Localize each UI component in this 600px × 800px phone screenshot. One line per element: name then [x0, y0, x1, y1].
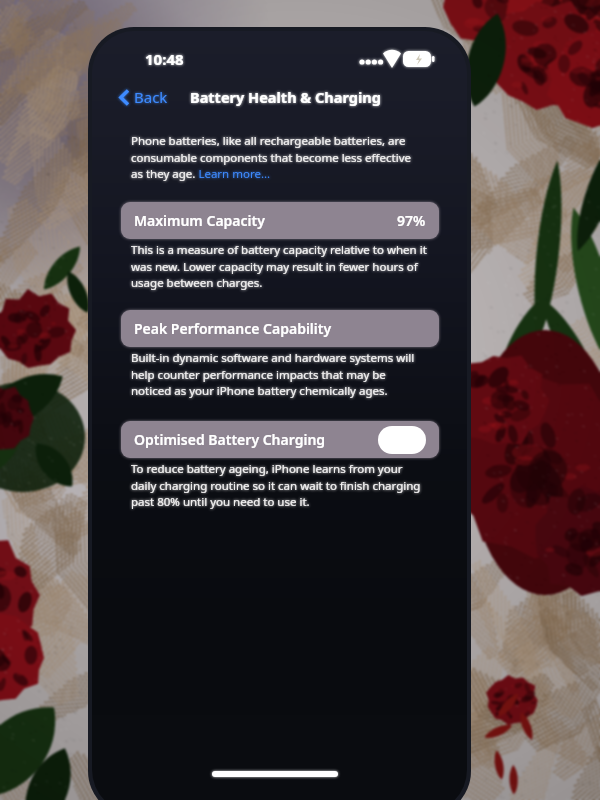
staticText: This is a measure of battery capacity re… [131, 242, 429, 290]
button[interactable]: Maximum Capacity [121, 202, 439, 239]
staticText: Peak Performance Capability [134, 319, 332, 338]
staticText: Peak Performance Capability [134, 319, 332, 338]
button[interactable]: Maximum Capacity [121, 202, 439, 239]
staticText: 10:48 [145, 49, 184, 69]
staticText: Built-in dynamic software and hardware s… [131, 350, 429, 398]
staticText: Battery Health & Charging [190, 87, 381, 107]
staticText: Optimised Battery Charging [134, 430, 326, 449]
button[interactable]: Peak Performance Capability [121, 310, 439, 347]
staticText: To reduce battery ageing, iPhone learns … [131, 461, 429, 509]
staticText: Phone batteries, like all rechargeable b… [131, 133, 419, 181]
staticText: 97% [397, 211, 426, 230]
button[interactable]: Back [119, 86, 168, 108]
staticText: 10:48 [145, 49, 184, 69]
button[interactable]: Optimised Battery Charging [121, 421, 439, 458]
button[interactable]: Optimised Battery Charging [121, 421, 439, 458]
staticText: Battery Health & Charging [190, 87, 381, 107]
staticText: Back [134, 87, 168, 107]
staticText: To reduce battery ageing, iPhone learns … [131, 461, 429, 509]
staticText: Back [134, 87, 168, 107]
staticText: Maximum Capacity [134, 211, 265, 230]
staticText: Optimised Battery Charging [134, 430, 326, 449]
staticText: Built-in dynamic software and hardware s… [131, 350, 429, 398]
staticText: This is a measure of battery capacity re… [131, 242, 429, 290]
button[interactable]: Back [119, 86, 168, 108]
staticText: 97% [397, 211, 426, 230]
button[interactable]: Peak Performance Capability [121, 310, 439, 347]
staticText: Phone batteries, like all rechargeable b… [131, 133, 419, 181]
staticText: Maximum Capacity [134, 211, 265, 230]
